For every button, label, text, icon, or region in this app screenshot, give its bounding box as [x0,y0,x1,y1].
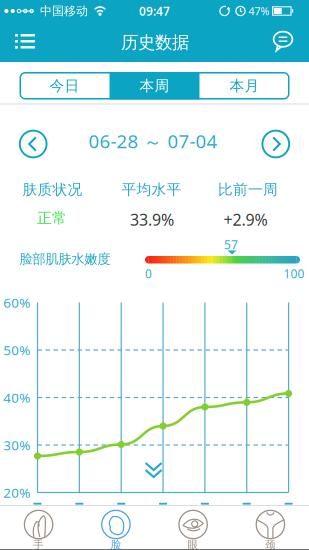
button[interactable]: 颈 [0,0,309,550]
button[interactable]: Messages [0,0,309,550]
staticText: 60% [3,294,30,311]
staticText: 20% [3,484,30,501]
staticText: 57 [224,236,238,252]
staticText: 眼 [188,538,199,550]
staticText: 50% [3,341,30,359]
staticText: 脸部肌肤水嫩度 [19,251,110,267]
staticText: 47% [248,4,269,18]
staticText: 09:47 [139,3,170,19]
button[interactable]: 本月 [199,72,289,99]
staticText: 0 [145,265,152,281]
staticText: 本周 [139,77,169,95]
staticText: 手 [33,538,44,550]
button[interactable]: 脸 [0,0,309,550]
button[interactable]: Expand [0,0,309,550]
staticText: +2.9% [223,209,267,230]
button[interactable]: 手 [0,0,309,550]
staticText: 肤质状况 [22,180,82,198]
button[interactable]: Next week [0,0,309,550]
staticText: 40% [3,389,30,406]
staticText: 颈 [265,538,276,550]
staticText: 今日 [49,77,79,95]
button[interactable]: Previous week [0,0,309,550]
staticText: 比前一周 [218,180,278,198]
staticText: 脸 [110,538,121,550]
staticText: 33.9% [130,209,174,230]
button[interactable]: Menu [0,0,309,550]
staticText: 中国移动 [40,4,88,18]
button[interactable]: 眼 [0,0,309,550]
staticText: 06-28 ～ 07-04 [88,129,217,153]
button[interactable]: 本周 [109,72,199,99]
staticText: 正常 [37,209,67,227]
staticText: 平均水平 [121,180,181,198]
staticText: 30% [3,436,30,454]
button[interactable]: 今日 [19,72,109,99]
staticText: 历史数据 [121,32,189,53]
staticText: 本月 [229,77,259,95]
staticText: 100 [283,265,304,281]
